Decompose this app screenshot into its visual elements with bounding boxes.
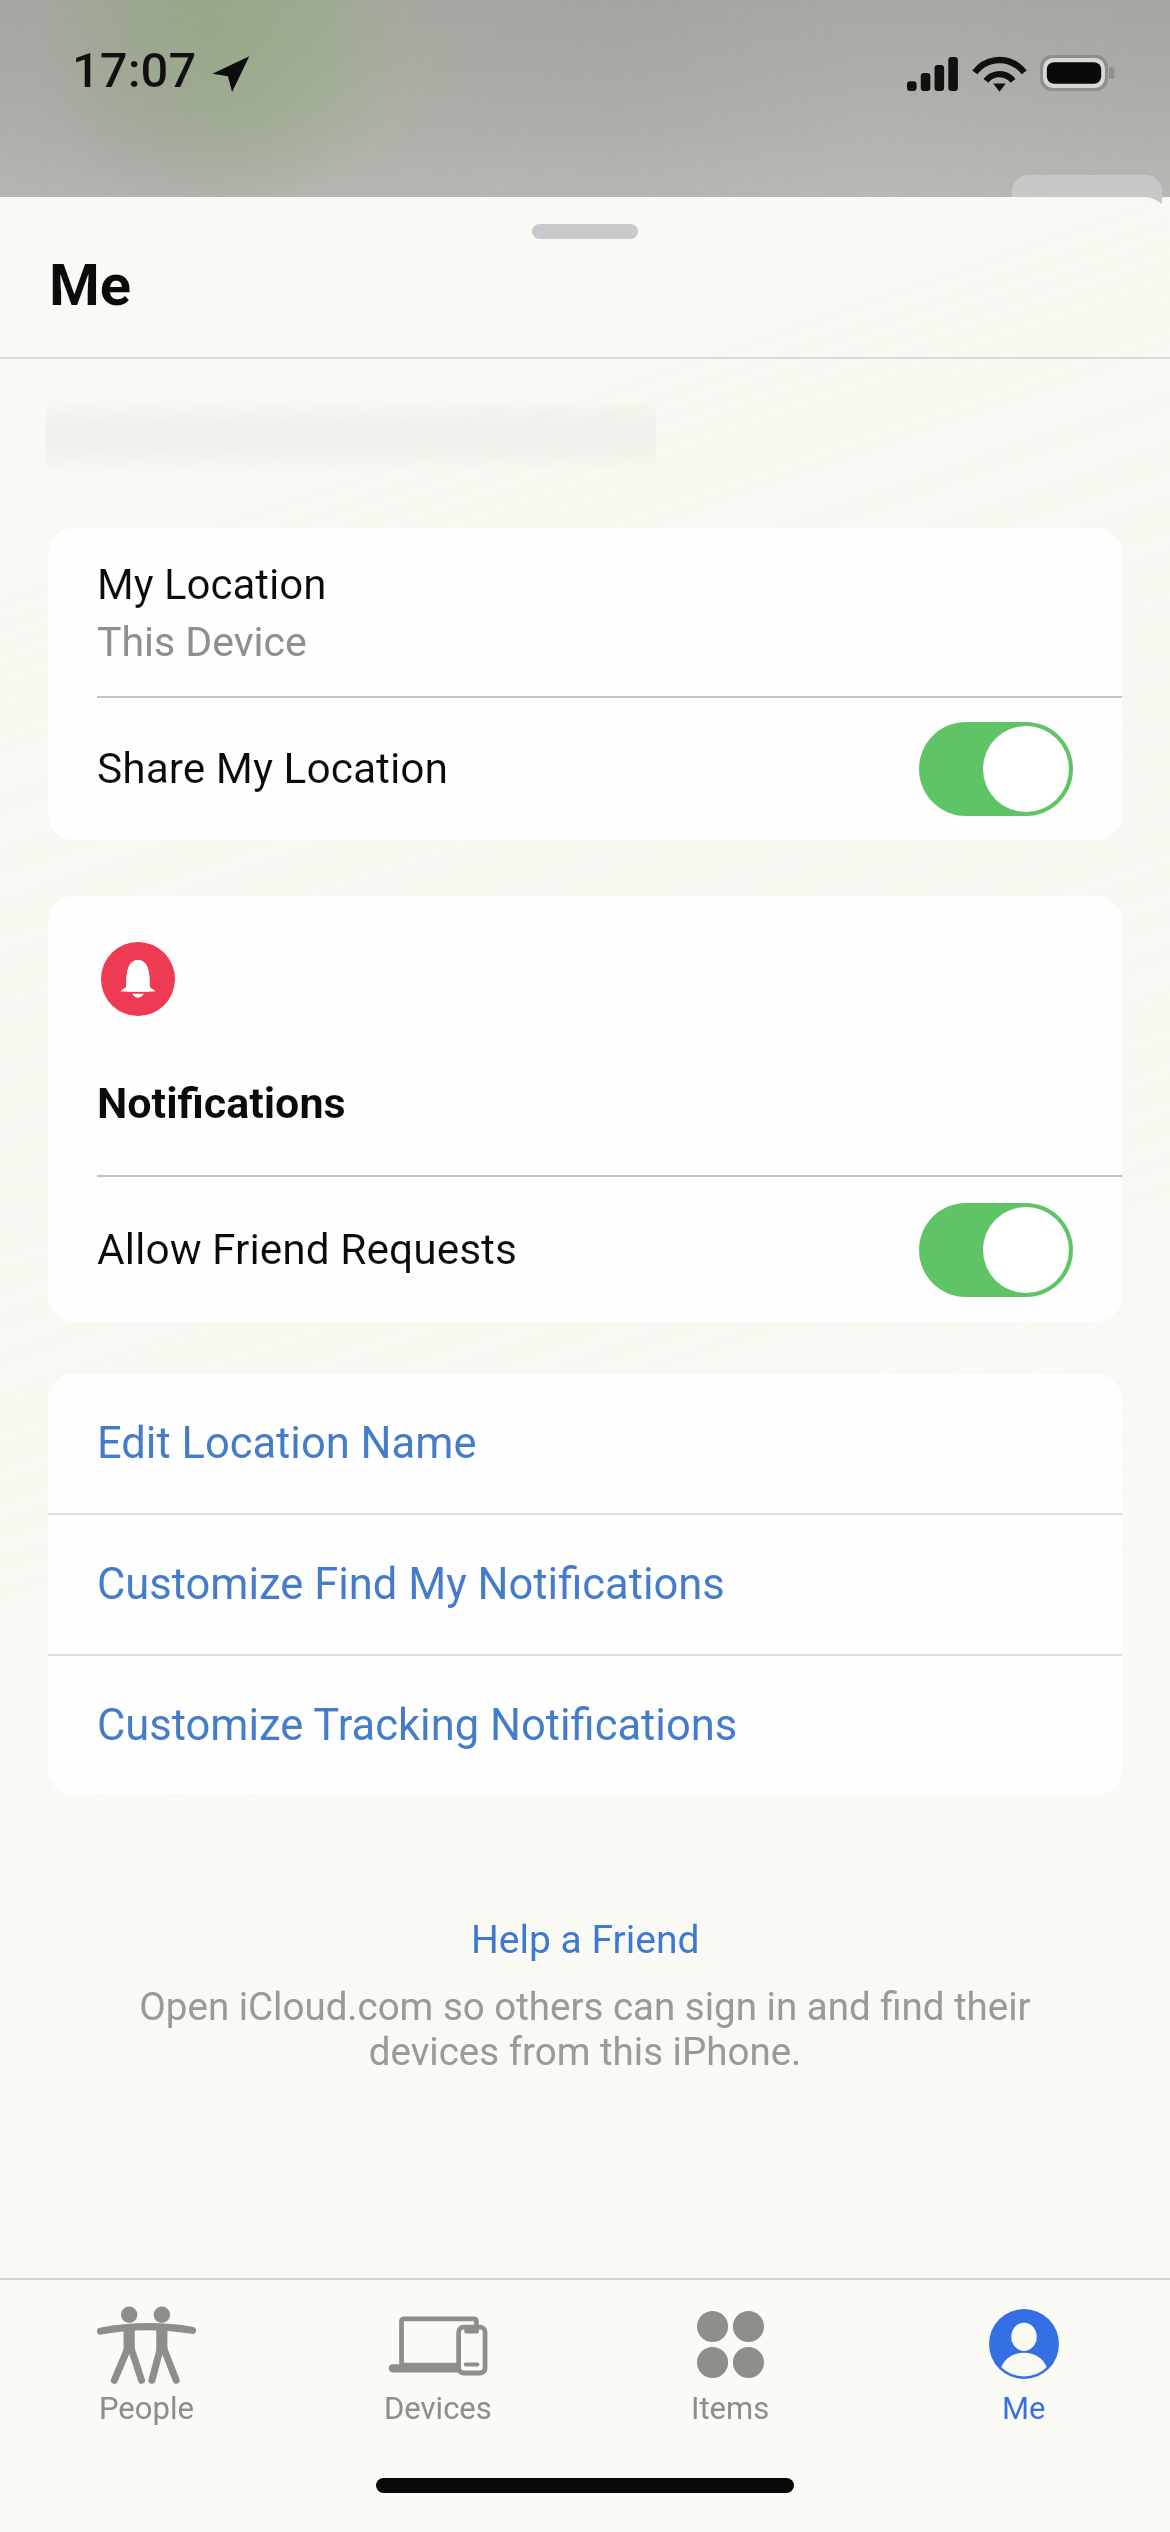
staticText: Items — [691, 2390, 770, 2426]
staticText: Me — [49, 251, 132, 319]
button[interactable]: Devices — [292, 2280, 584, 2434]
staticText: People — [99, 2390, 194, 2426]
staticText: Customize Find My Notifications — [97, 1559, 725, 1610]
button[interactable]: People — [0, 2280, 292, 2434]
staticText: Me — [1002, 2390, 1046, 2426]
staticText: Open iCloud.com so others can sign in an… — [110, 1984, 1060, 2075]
button[interactable]: Customize Tracking Notifications — [48, 1656, 1122, 1795]
staticText: This Device — [97, 618, 307, 666]
button[interactable]: Edit Location Name — [48, 1374, 1122, 1513]
staticText: Customize Tracking Notifications — [97, 1700, 738, 1751]
button[interactable]: Toggle — [919, 1203, 1073, 1297]
button[interactable]: Share My Location — [48, 698, 1122, 840]
staticText: Notifications — [97, 1078, 346, 1128]
staticText: Edit Location Name — [97, 1418, 477, 1469]
staticText: Allow Friend Requests — [97, 1225, 517, 1275]
staticText: Help a Friend — [471, 1917, 700, 1963]
button[interactable]: Allow Friend Requests — [48, 1177, 1122, 1322]
button[interactable]: Toggle — [919, 722, 1073, 816]
button[interactable]: Help a Friend — [455, 1913, 716, 1967]
staticText: 17:07 — [72, 42, 197, 99]
button[interactable]: Me — [877, 2280, 1170, 2434]
staticText: Share My Location — [97, 744, 449, 794]
button[interactable]: Customize Find My Notifications — [48, 1515, 1122, 1654]
button[interactable]: Items — [584, 2280, 877, 2434]
staticText: My Location — [97, 560, 327, 609]
staticText: Devices — [384, 2390, 492, 2426]
